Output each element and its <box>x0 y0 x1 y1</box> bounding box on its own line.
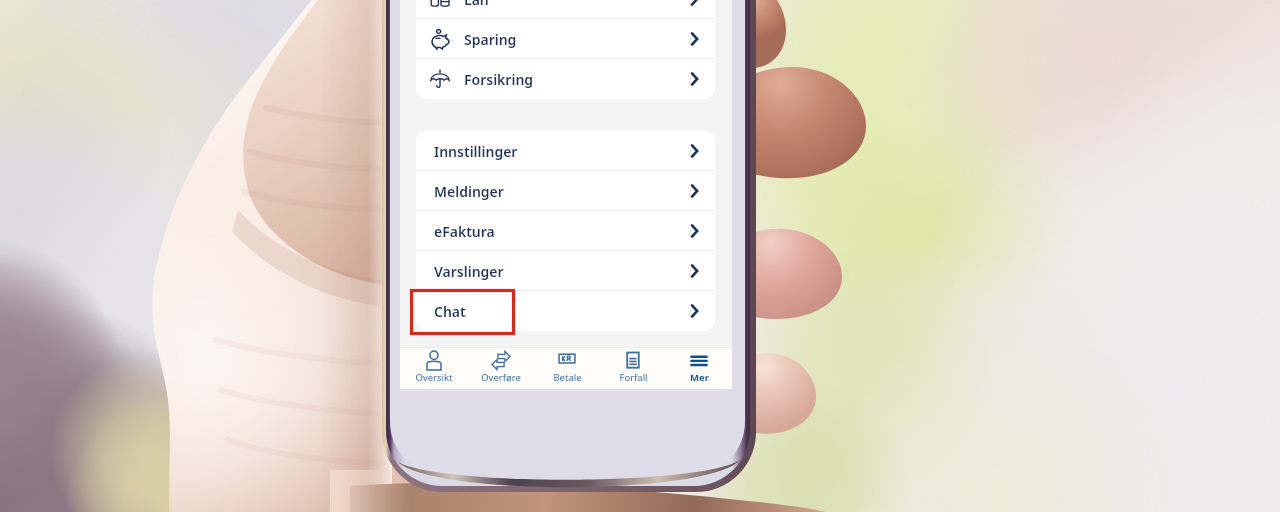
button[interactable]: Varslinger <box>416 251 715 291</box>
button[interactable]: Chat <box>416 291 715 331</box>
staticText: Overføre <box>481 371 521 384</box>
staticText: Mer <box>690 371 709 384</box>
staticText: Innstillinger <box>434 142 518 161</box>
staticText: Lån <box>464 0 489 9</box>
button[interactable]: Oversikt <box>400 348 467 384</box>
staticText: Chat <box>434 302 466 321</box>
button[interactable]: eFaktura <box>416 211 715 251</box>
staticText: Varslinger <box>434 262 504 281</box>
staticText: Meldinger <box>434 182 504 201</box>
button[interactable]: Meldinger <box>416 171 715 211</box>
button[interactable]: Sparing <box>416 19 715 59</box>
staticText: Forfall <box>619 371 648 384</box>
button[interactable]: Lån <box>416 0 715 19</box>
staticText: eFaktura <box>434 222 495 241</box>
staticText: Oversikt <box>415 371 453 384</box>
button[interactable]: Forfall <box>600 348 666 384</box>
staticText: Sparing <box>464 30 517 49</box>
staticText: Betale <box>553 371 582 384</box>
button[interactable]: Overføre <box>467 348 534 384</box>
button[interactable]: Betale <box>534 348 600 384</box>
button[interactable]: Forsikring <box>416 59 715 99</box>
button[interactable]: Innstillinger <box>416 131 715 171</box>
button[interactable]: Mer <box>666 348 732 384</box>
staticText: Forsikring <box>464 70 534 89</box>
